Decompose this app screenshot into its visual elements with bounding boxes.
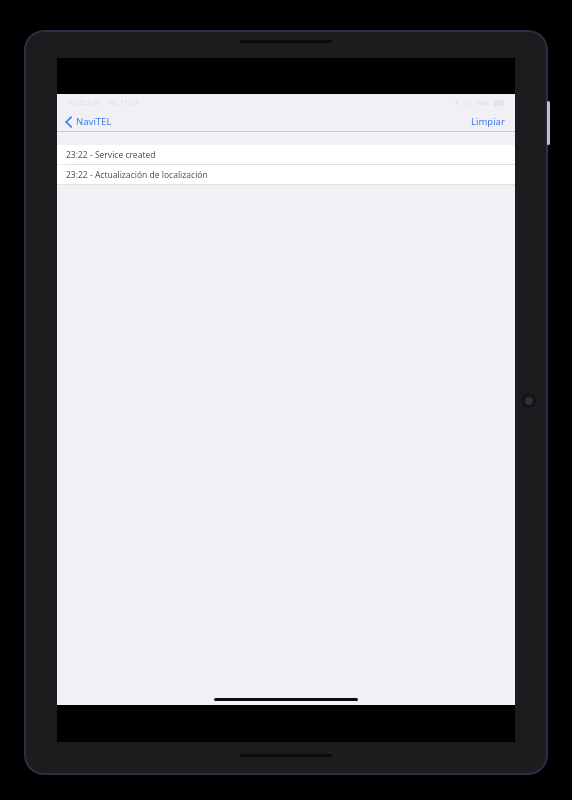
staticText: Limpiar xyxy=(471,115,505,128)
staticText: NaviTEL xyxy=(76,115,112,128)
staticText: 100% xyxy=(474,99,490,107)
button[interactable]: Limpiar xyxy=(461,112,515,131)
staticText: 11:22 p.m. Vie 11 jul xyxy=(68,98,139,108)
button[interactable]: 23:22 - Actualización de localización xyxy=(57,165,515,184)
staticText: 23:22 - Service created xyxy=(66,149,156,161)
other: Power button xyxy=(547,101,550,145)
staticText: 23:22 - Actualización de localización xyxy=(66,169,208,181)
button[interactable]: 23:22 - Service created xyxy=(57,145,515,164)
button[interactable]: NaviTEL xyxy=(57,113,120,130)
